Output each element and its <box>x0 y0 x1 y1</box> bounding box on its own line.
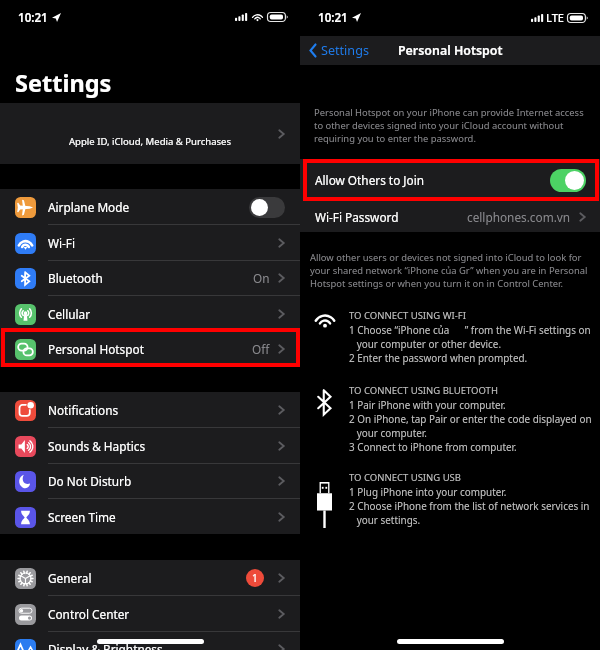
staticText: Wi-Fi <box>48 235 75 251</box>
staticText: Allow Others to Join <box>315 172 425 188</box>
button[interactable]: Wi-Fi <box>0 225 300 261</box>
staticText: Screen Time <box>48 509 116 525</box>
staticText: Control Center <box>48 606 130 622</box>
staticText: 2 Choose iPhone from the list of network… <box>349 499 590 512</box>
button[interactable]: Personal Hotspot <box>0 331 300 367</box>
staticText: Apple ID, iCloud, Media & Purchases <box>69 135 232 148</box>
staticText: Settings <box>15 67 112 99</box>
staticText: General <box>48 570 92 586</box>
staticText: 10:21 <box>318 10 348 26</box>
staticText: 1 <box>252 571 258 585</box>
staticText: TO CONNECT USING WI-FI <box>349 309 466 322</box>
button[interactable]: Settings <box>309 42 369 59</box>
staticText: 2 On iPhone, tap Pair or enter the code … <box>349 412 592 425</box>
staticText: requiring you to enter the password. <box>314 132 476 145</box>
staticText: Cellular <box>48 306 91 322</box>
staticText: 1 Plug iPhone into your computer. <box>349 485 507 498</box>
staticText: On <box>253 270 270 286</box>
staticText: Do Not Disturb <box>48 473 132 489</box>
staticText: 1 Pair iPhone with your computer. <box>349 398 506 411</box>
staticText: 1 Choose “iPhone của ” from the Wi-Fi se… <box>349 323 591 336</box>
staticText: your settings. <box>349 513 421 526</box>
staticText: Hotspot settings or when you turn it on … <box>310 277 564 290</box>
staticText: your shared network “iPhone của Gr” when… <box>310 264 588 277</box>
staticText: to other devices signed into your iCloud… <box>314 119 564 132</box>
button[interactable]: Airplane Mode <box>0 189 300 225</box>
staticText: 2 Enter the password when prompted. <box>349 351 528 364</box>
button[interactable]: Bluetooth <box>0 260 300 296</box>
staticText: TO CONNECT USING BLUETOOTH <box>349 384 498 397</box>
button[interactable]: General <box>0 560 300 596</box>
staticText: 10:21 <box>18 10 48 26</box>
staticText: Personal Hotspot on your iPhone can prov… <box>314 106 584 119</box>
staticText: Wi-Fi Password <box>315 209 399 225</box>
button[interactable]: Control Center <box>0 596 300 632</box>
button[interactable]: Display & Brightness <box>0 631 300 650</box>
button[interactable]: Notifications <box>0 392 300 428</box>
staticText: cellphones.com.vn <box>467 209 571 225</box>
staticText: Sounds & Haptics <box>48 438 146 454</box>
staticText: LTE <box>546 10 564 25</box>
staticText: Bluetooth <box>48 270 103 286</box>
button[interactable]: Do Not Disturb <box>0 463 300 499</box>
staticText: Allow other users or devices not signed … <box>310 251 582 264</box>
button[interactable]: Toggle off <box>249 197 285 218</box>
staticText: Settings <box>321 42 369 59</box>
staticText: Personal Hotspot <box>398 42 503 59</box>
button[interactable]: Toggle on <box>550 169 586 192</box>
staticText: 3 Connect to iPhone from computer. <box>349 440 517 453</box>
staticText: TO CONNECT USING USB <box>349 471 462 484</box>
staticText: your computer or other device. <box>349 337 502 350</box>
staticText: your computer. <box>349 426 427 439</box>
button[interactable]: Cellular <box>0 296 300 332</box>
button[interactable]: Wi-Fi Password <box>300 201 600 232</box>
button[interactable]: Screen Time <box>0 499 300 535</box>
staticText: Display & Brightness <box>48 641 163 650</box>
staticText: Airplane Mode <box>48 199 130 215</box>
staticText: Personal Hotspot <box>48 341 144 357</box>
button[interactable]: Apple ID, iCloud, Media & Purchases <box>0 103 300 164</box>
button[interactable]: Allow Others to Join <box>300 159 600 201</box>
button[interactable]: Sounds & Haptics <box>0 428 300 464</box>
staticText: Notifications <box>48 402 119 418</box>
staticText: Off <box>252 341 270 357</box>
